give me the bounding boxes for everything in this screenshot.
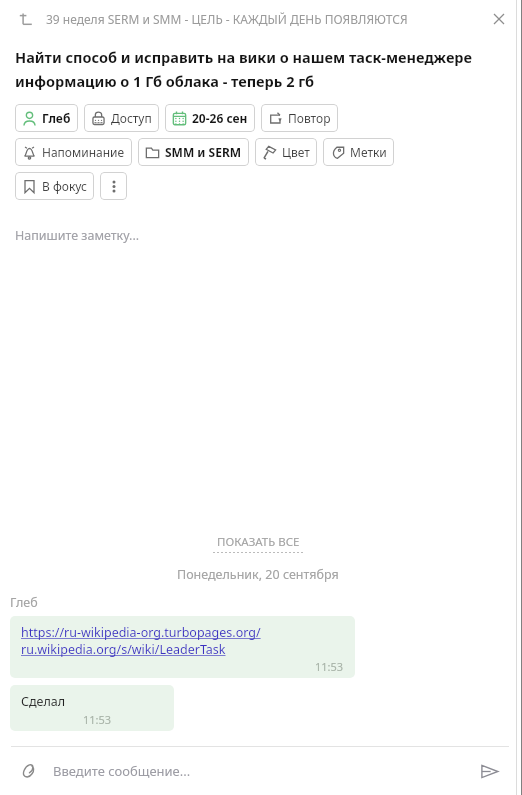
button[interactable]: More options <box>100 172 127 200</box>
button[interactable]: Attach file <box>14 757 42 785</box>
staticText: Метки <box>350 144 387 160</box>
staticText: https://ru-wikipedia-org.turbopages.org/ <box>21 624 261 641</box>
staticText: Введите сообщение... <box>53 762 191 780</box>
staticText: ПОКАЗАТЬ ВСЕ <box>217 534 300 550</box>
staticText: Найти способ и исправить на вики о нашем… <box>15 47 473 67</box>
button[interactable]: Close <box>488 8 510 30</box>
button[interactable]: 20-26 сен <box>165 104 255 132</box>
button[interactable]: В фокус <box>15 172 94 200</box>
staticText: информацию о 1 Гб облака - теперь 2 гб <box>15 71 315 91</box>
button[interactable]: https://ru-wikipedia-org.turbopages.org/ <box>10 616 355 678</box>
staticText: Цвет <box>282 144 310 160</box>
staticText: SMM и SERM <box>165 144 242 160</box>
staticText: Глеб <box>42 110 71 126</box>
staticText: 39 неделя SERM и SMM - ЦЕЛЬ - КАЖДЫЙ ДЕН… <box>46 11 482 27</box>
staticText: Глеб <box>10 594 38 611</box>
button[interactable]: SMM и SERM <box>138 138 249 166</box>
button[interactable]: Введите сообщение... <box>53 762 466 780</box>
button[interactable]: Цвет <box>255 138 317 166</box>
staticText: ru.wikipedia.org/s/wiki/LeaderTask <box>21 641 226 658</box>
staticText: 11:53 <box>83 712 112 727</box>
button[interactable]: Сделал <box>10 685 174 731</box>
staticText: 11:53 <box>315 659 344 674</box>
staticText: Доступ <box>111 110 152 126</box>
staticText: Напоминание <box>42 144 125 160</box>
staticText: Понедельник, 20 сентября <box>177 566 339 583</box>
staticText: В фокус <box>42 178 87 194</box>
button[interactable]: Parent task <box>15 9 35 29</box>
button[interactable]: Send <box>474 756 504 786</box>
button[interactable]: ПОКАЗАТЬ ВСЕ <box>213 534 303 553</box>
staticText: 20-26 сен <box>192 110 248 126</box>
staticText: Напишите заметку... <box>15 227 140 244</box>
button[interactable]: Метки <box>323 138 394 166</box>
button[interactable]: Доступ <box>84 104 159 132</box>
staticText: Повтор <box>288 110 331 126</box>
button[interactable]: Глеб <box>15 104 78 132</box>
button[interactable]: Повтор <box>261 104 338 132</box>
staticText: Сделал <box>21 693 66 710</box>
button[interactable]: Напишите заметку... <box>15 227 522 244</box>
button[interactable]: Напоминание <box>15 138 132 166</box>
